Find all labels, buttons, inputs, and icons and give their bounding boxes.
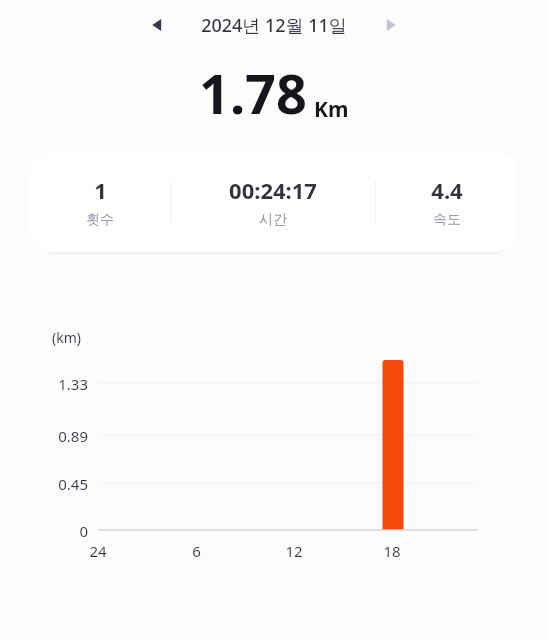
staticText: 0.45 [58, 474, 88, 494]
staticText: 횟수 [86, 211, 114, 229]
staticText: 1 [94, 175, 107, 205]
button[interactable]: 4.4 [376, 175, 518, 229]
staticText: (km) [52, 328, 81, 347]
staticText: Km [314, 95, 349, 124]
staticText: 00:24:17 [229, 175, 317, 205]
staticText: 0.89 [58, 426, 88, 446]
staticText: 속도 [433, 211, 461, 229]
staticText: 18 [383, 541, 401, 561]
staticText: 0 [79, 521, 88, 541]
button[interactable]: 00:24:17 [171, 175, 375, 229]
button[interactable]: Next day [377, 11, 405, 39]
staticText: 24 [89, 541, 107, 561]
staticText: 6 [192, 541, 201, 561]
staticText: 1.78 [199, 56, 307, 130]
staticText: 12 [285, 541, 303, 561]
staticText: 4.4 [431, 175, 463, 205]
staticText: 1.33 [58, 374, 88, 394]
button[interactable]: Previous day [143, 11, 171, 39]
staticText: 시간 [259, 211, 287, 229]
button[interactable]: 1 [30, 175, 170, 229]
staticText: 2024년 12월 11일 [201, 13, 347, 38]
